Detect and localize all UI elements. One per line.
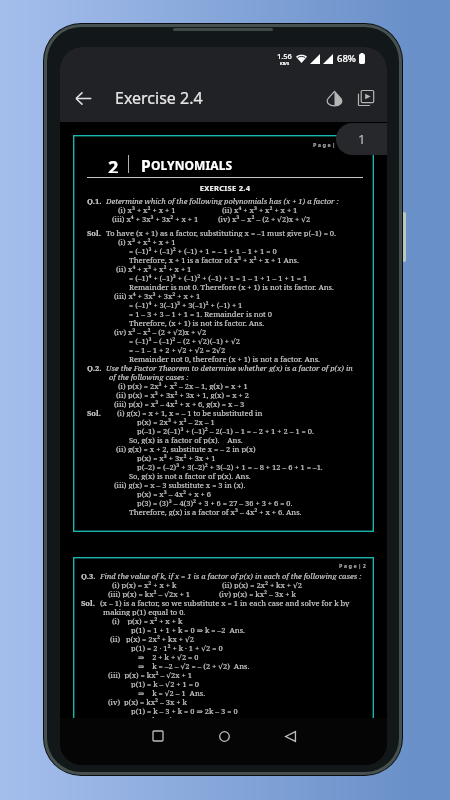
staticText: Use the Factor Theorem to determine whet… bbox=[106, 363, 363, 372]
staticText: 1 bbox=[358, 130, 366, 148]
staticText: (i) x³ + x² + x + 1 bbox=[118, 237, 176, 246]
staticText: 68% bbox=[337, 52, 356, 65]
staticText: p(x) = x³ – 4x² + x + 6 bbox=[137, 489, 211, 498]
staticText: (iii) p(x) = x³ – 4x² + x + 6, g(x) = x … bbox=[114, 399, 245, 408]
staticText: P a g e | 1 bbox=[313, 141, 340, 148]
staticText: (iii) x⁴ + 3x³ + 3x² + x + 1 bbox=[112, 214, 199, 223]
staticText: (ii) x⁴ + x³ + x² + x + 1 bbox=[222, 205, 298, 214]
button[interactable]: Recents bbox=[139, 718, 177, 754]
staticText: = – 1 – 1 + 2 + √2 + √2 = 2√2 bbox=[129, 345, 226, 354]
button[interactable]: Slideshow bbox=[350, 82, 382, 114]
staticText: ⇒ k = √2 – 1 Ans. bbox=[138, 688, 206, 697]
staticText: P bbox=[141, 155, 151, 173]
button[interactable]: Invert colors bbox=[318, 82, 350, 114]
staticText: = (–1)⁴ + 3(–1)³ + 3(–1)² + (–1) + 1 bbox=[129, 300, 243, 309]
staticText: Q.3. bbox=[81, 571, 96, 580]
staticText: (i) p(x) = x² + x + k bbox=[112, 580, 177, 589]
staticText: ⇒ 2 + k + √2 = 0 bbox=[138, 652, 199, 661]
staticText: p(1) = 1 + 1 + k = 0 ⇒ k = –2 Ans. bbox=[131, 625, 245, 634]
staticText: (ii) p(x) = x³ + 3x² + 3x + 1, g(x) = x … bbox=[116, 390, 249, 399]
staticText: Sol. bbox=[87, 408, 101, 417]
button[interactable]: Back bbox=[66, 81, 100, 115]
staticText: (iv) x³ – x² – (2 + √2)x + √2 bbox=[218, 214, 311, 223]
staticText: (i) p(x) = 2x³ + x² – 2x – 1, g(x) = x +… bbox=[118, 381, 248, 390]
staticText: To have (x + 1) as a factor, substitutin… bbox=[106, 228, 336, 237]
staticText: EXERCISE 2.4 bbox=[87, 183, 363, 193]
staticText: = 1 – 3 + 3 – 1 + 1 = 1. Remainder is no… bbox=[129, 309, 272, 318]
staticText: (iii) g(x) = x – 3 substitute x = 3 in (… bbox=[114, 480, 246, 489]
staticText: ⇒ k = –2 – √2 = – (2 + √2) Ans. bbox=[138, 661, 250, 670]
staticText: P a g e | 2 bbox=[339, 562, 366, 569]
staticText: Therefore, g(x) is a factor of x³ – 4x² … bbox=[129, 507, 302, 516]
staticText: (iv) p(x) = kx² – 3x + k bbox=[219, 589, 296, 598]
staticText: Find the value of k, if x = 1 is a facto… bbox=[100, 571, 362, 580]
staticText: (i) g(x) = x + 1, x = – 1 to be substitu… bbox=[117, 408, 263, 417]
staticText: (ii) x⁴ + x³ + x² + x + 1 bbox=[116, 264, 192, 273]
button[interactable]: 1 bbox=[336, 123, 387, 155]
staticText: p(1) = 2 · 1² + k · 1 + √2 = 0 bbox=[131, 643, 223, 652]
staticText: Sol. bbox=[87, 228, 101, 237]
staticText: p(–1) = 2(–1)³ + (–1)² – 2(–1) – 1 = – 2… bbox=[137, 426, 314, 435]
button[interactable]: Back bbox=[271, 718, 309, 754]
staticText: So, g(x) is a factor of p(x). Ans. bbox=[129, 435, 243, 444]
staticText: Determine which of the following polynom… bbox=[106, 196, 339, 205]
staticText: (iii) p(x) = kx² – √2x + 1 bbox=[108, 670, 192, 679]
staticText: (x – 1) is a factor, so we substitute x … bbox=[100, 598, 350, 607]
staticText: (ii) p(x) = 2x² + kx + √2 bbox=[110, 634, 194, 643]
staticText: p(x) = x³ + 3x² + 3x + 1 bbox=[137, 453, 216, 462]
staticText: (ii) p(x) = 2x² + kx + √2 bbox=[222, 580, 303, 589]
staticText: of the following cases : bbox=[109, 372, 189, 381]
staticText: (iv) x³ – x² – (2 + √2)x + √2 bbox=[114, 327, 207, 336]
staticText: making p(1) equal to 0. bbox=[103, 607, 186, 616]
staticText: p(x) = 2x³ + x² – 2x – 1 bbox=[137, 417, 215, 426]
button[interactable]: Home bbox=[205, 718, 243, 754]
staticText: KB/S bbox=[280, 61, 290, 66]
staticText: Exercise 2.4 bbox=[115, 87, 203, 109]
staticText: = (–1)³ + (–1)² + (–1) + 1 = – 1 + 1 – 1… bbox=[129, 246, 277, 255]
staticText: Q.2. bbox=[87, 363, 102, 372]
staticText: p(1) = k – 3 + k = 0 ⇒ 2k – 3 = 0 bbox=[131, 706, 238, 715]
staticText: (iii) x⁴ + 3x³ + 3x² + x + 1 bbox=[114, 291, 201, 300]
staticText: Therefore, (x + 1) is not its factor. An… bbox=[129, 318, 265, 327]
staticText: Remainder not 0, therefore (x + 1) is no… bbox=[129, 354, 320, 363]
staticText: (i) x³ + x² + x + 1 bbox=[118, 205, 176, 214]
staticText: OLYNOMIALS bbox=[151, 157, 233, 173]
staticText: 2 bbox=[108, 155, 119, 173]
staticText: ⇒ k = 3/2 Ans. bbox=[138, 715, 197, 718]
staticText: p(3) = (3)³ – 4(3)² + 3 + 6 = 27 – 36 + … bbox=[137, 498, 293, 507]
staticText: p(–2) = (–2)³ + 3(–2)² + 3(–2) + 1 = – 8… bbox=[137, 462, 323, 471]
staticText: (ii) g(x) = x + 2, substitute x = – 2 in… bbox=[116, 444, 256, 453]
staticText: = (–1)⁴ + (–1)³ + (–1)² + (–1) + 1 = 1 –… bbox=[129, 273, 308, 282]
staticText: Q.1. bbox=[87, 196, 102, 205]
staticText: 1.56 bbox=[277, 51, 292, 61]
staticText: (i) p(x) = x² + x + k bbox=[112, 616, 183, 625]
staticText: Remainder is not 0. Therefore (x + 1) is… bbox=[129, 282, 334, 291]
staticText: (iv) p(x) = kx² – 3x + k bbox=[108, 697, 187, 706]
staticText: = (–1)³ – (–1)² – (2 + √2)(–1) + √2 bbox=[129, 336, 241, 345]
staticText: (iii) p(x) = kx² – √2x + 1 bbox=[108, 589, 191, 598]
staticText: p(1) = k – √2 + 1 = 0 bbox=[131, 679, 200, 688]
staticText: So, g(x) is not a factor of p(x). Ans. bbox=[129, 471, 251, 480]
staticText: Therefore, x + 1 is a factor of x³ + x² … bbox=[129, 255, 299, 264]
staticText: Sol. bbox=[81, 598, 95, 607]
